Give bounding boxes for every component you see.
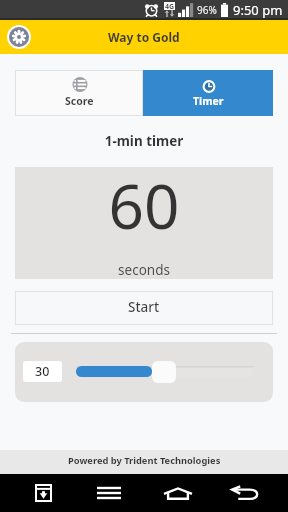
- button[interactable]: Back: [227, 476, 263, 510]
- staticText: Score: [65, 94, 94, 108]
- staticText: Start: [128, 298, 160, 316]
- button[interactable]: 30: [23, 361, 62, 382]
- button[interactable]: Timer: [143, 70, 273, 116]
- staticText: 4G: [165, 2, 175, 10]
- button[interactable]: Start: [15, 291, 273, 325]
- button[interactable]: Timer duration slider: [152, 361, 176, 383]
- button[interactable]: Score: [15, 70, 143, 116]
- staticText: 96%: [197, 3, 217, 17]
- staticText: 9:50 pm: [233, 1, 283, 19]
- button[interactable]: Hide keyboard: [25, 476, 61, 510]
- staticText: seconds: [15, 261, 273, 279]
- staticText: 60: [15, 163, 273, 247]
- staticText: Way to Gold: [108, 29, 180, 45]
- button[interactable]: Menu: [91, 476, 127, 510]
- staticText: Powered by Trident Technologies: [68, 454, 221, 467]
- button[interactable]: Home: [160, 476, 196, 510]
- button[interactable]: Settings: [6, 24, 32, 50]
- staticText: 1-min timer: [0, 132, 288, 150]
- staticText: Timer: [193, 94, 224, 108]
- staticText: 30: [35, 363, 50, 380]
